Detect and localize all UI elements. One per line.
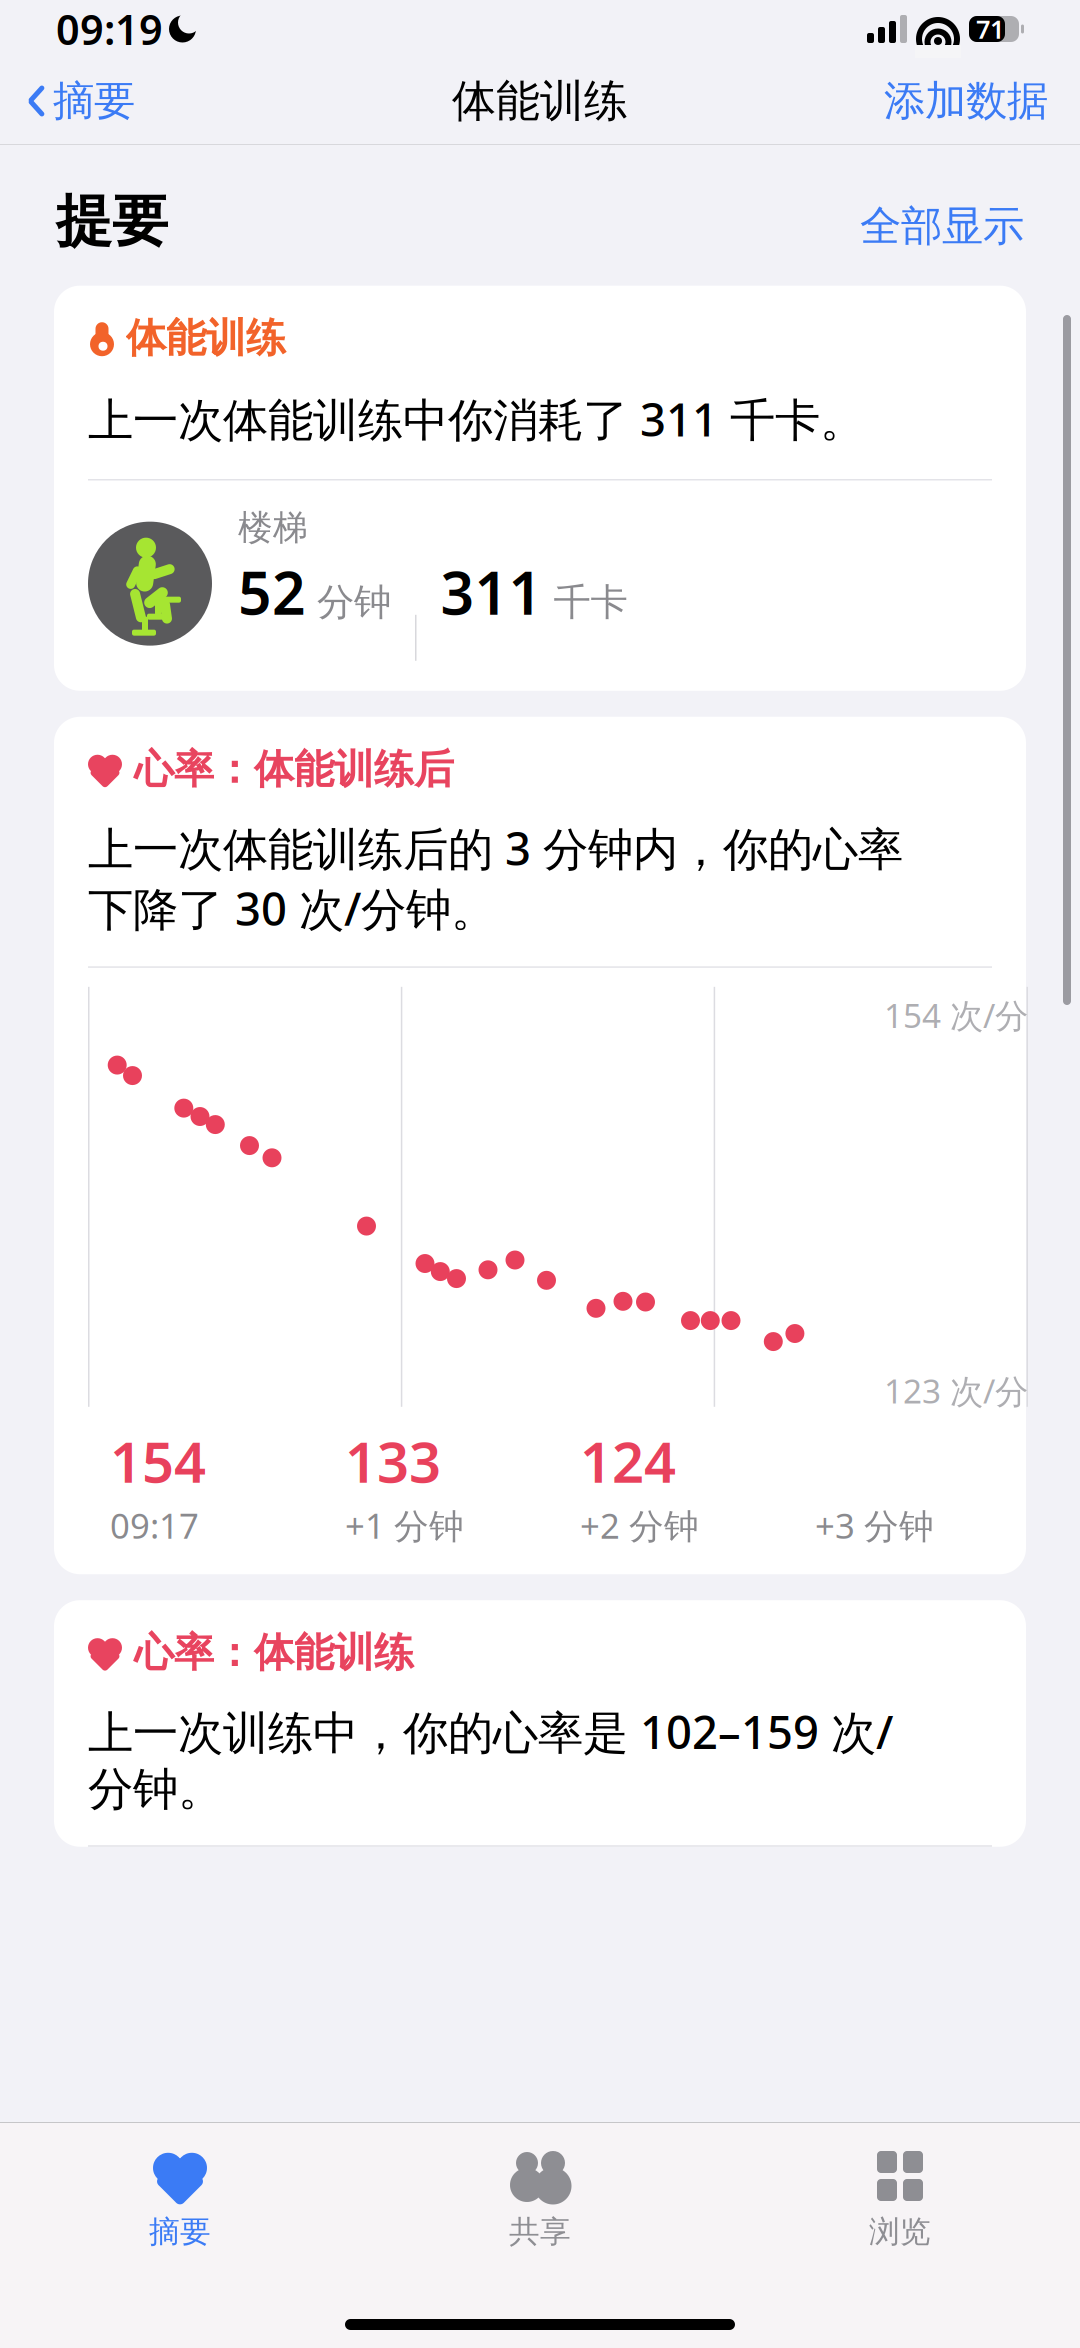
staticText: 上一次体能训练后的 3 分钟内，你的心率 下降了 30 次/分钟。 xyxy=(88,818,903,938)
staticText: 体能训练 xyxy=(452,74,628,128)
staticText: 09:17 xyxy=(110,1502,199,1548)
staticText: 71 xyxy=(976,12,1004,46)
staticText: 心率：体能训练后 xyxy=(134,745,454,794)
staticText: 心率：体能训练 xyxy=(134,1628,414,1677)
staticText: 体能训练 xyxy=(126,314,286,363)
staticText: 摘要 xyxy=(149,2213,211,2251)
button[interactable]: 心率：体能训练 xyxy=(54,1600,1026,1847)
staticText: 133 xyxy=(345,1424,441,1498)
staticText: 共享 xyxy=(509,2213,571,2251)
staticText: 123 次/分 xyxy=(884,1369,1028,1413)
staticText: 311 xyxy=(440,553,542,631)
staticText: +1 分钟 xyxy=(345,1502,464,1548)
staticText: +3 分钟 xyxy=(815,1502,934,1548)
staticText: +2 分钟 xyxy=(580,1502,699,1548)
staticText: 摘要 xyxy=(53,76,135,126)
staticText: 分钟 xyxy=(306,579,391,625)
staticText: 提要 xyxy=(56,187,168,256)
staticText: 52 xyxy=(238,553,306,631)
staticText: 154 次/分 xyxy=(884,993,1028,1037)
button[interactable]: 浏览 xyxy=(720,2137,1080,2263)
staticText: 楼梯 xyxy=(238,506,308,549)
staticText: 154 xyxy=(110,1424,206,1498)
button[interactable]: 全部显示 xyxy=(860,193,1024,260)
staticText: 09:19 xyxy=(56,2,163,56)
button[interactable]: 心率：体能训练后 xyxy=(54,717,1026,1574)
staticText: 千卡 xyxy=(542,579,627,625)
staticText: 124 xyxy=(580,1424,676,1498)
button[interactable]: 摘要 xyxy=(0,2137,360,2263)
button[interactable]: 体能训练 xyxy=(54,286,1026,691)
button[interactable]: 摘要 xyxy=(0,64,135,138)
staticText: 上一次体能训练中你消耗了 311 千卡。 xyxy=(88,389,865,449)
staticText: 添加数据 xyxy=(884,76,1048,126)
staticText: 浏览 xyxy=(869,2213,931,2251)
button[interactable]: 添加数据 xyxy=(884,64,1080,138)
staticText: 全部显示 xyxy=(860,201,1024,252)
staticText: 上一次训练中，你的心率是 102–159 次/ 分钟。 xyxy=(88,1701,893,1817)
button[interactable]: 共享 xyxy=(360,2137,720,2263)
